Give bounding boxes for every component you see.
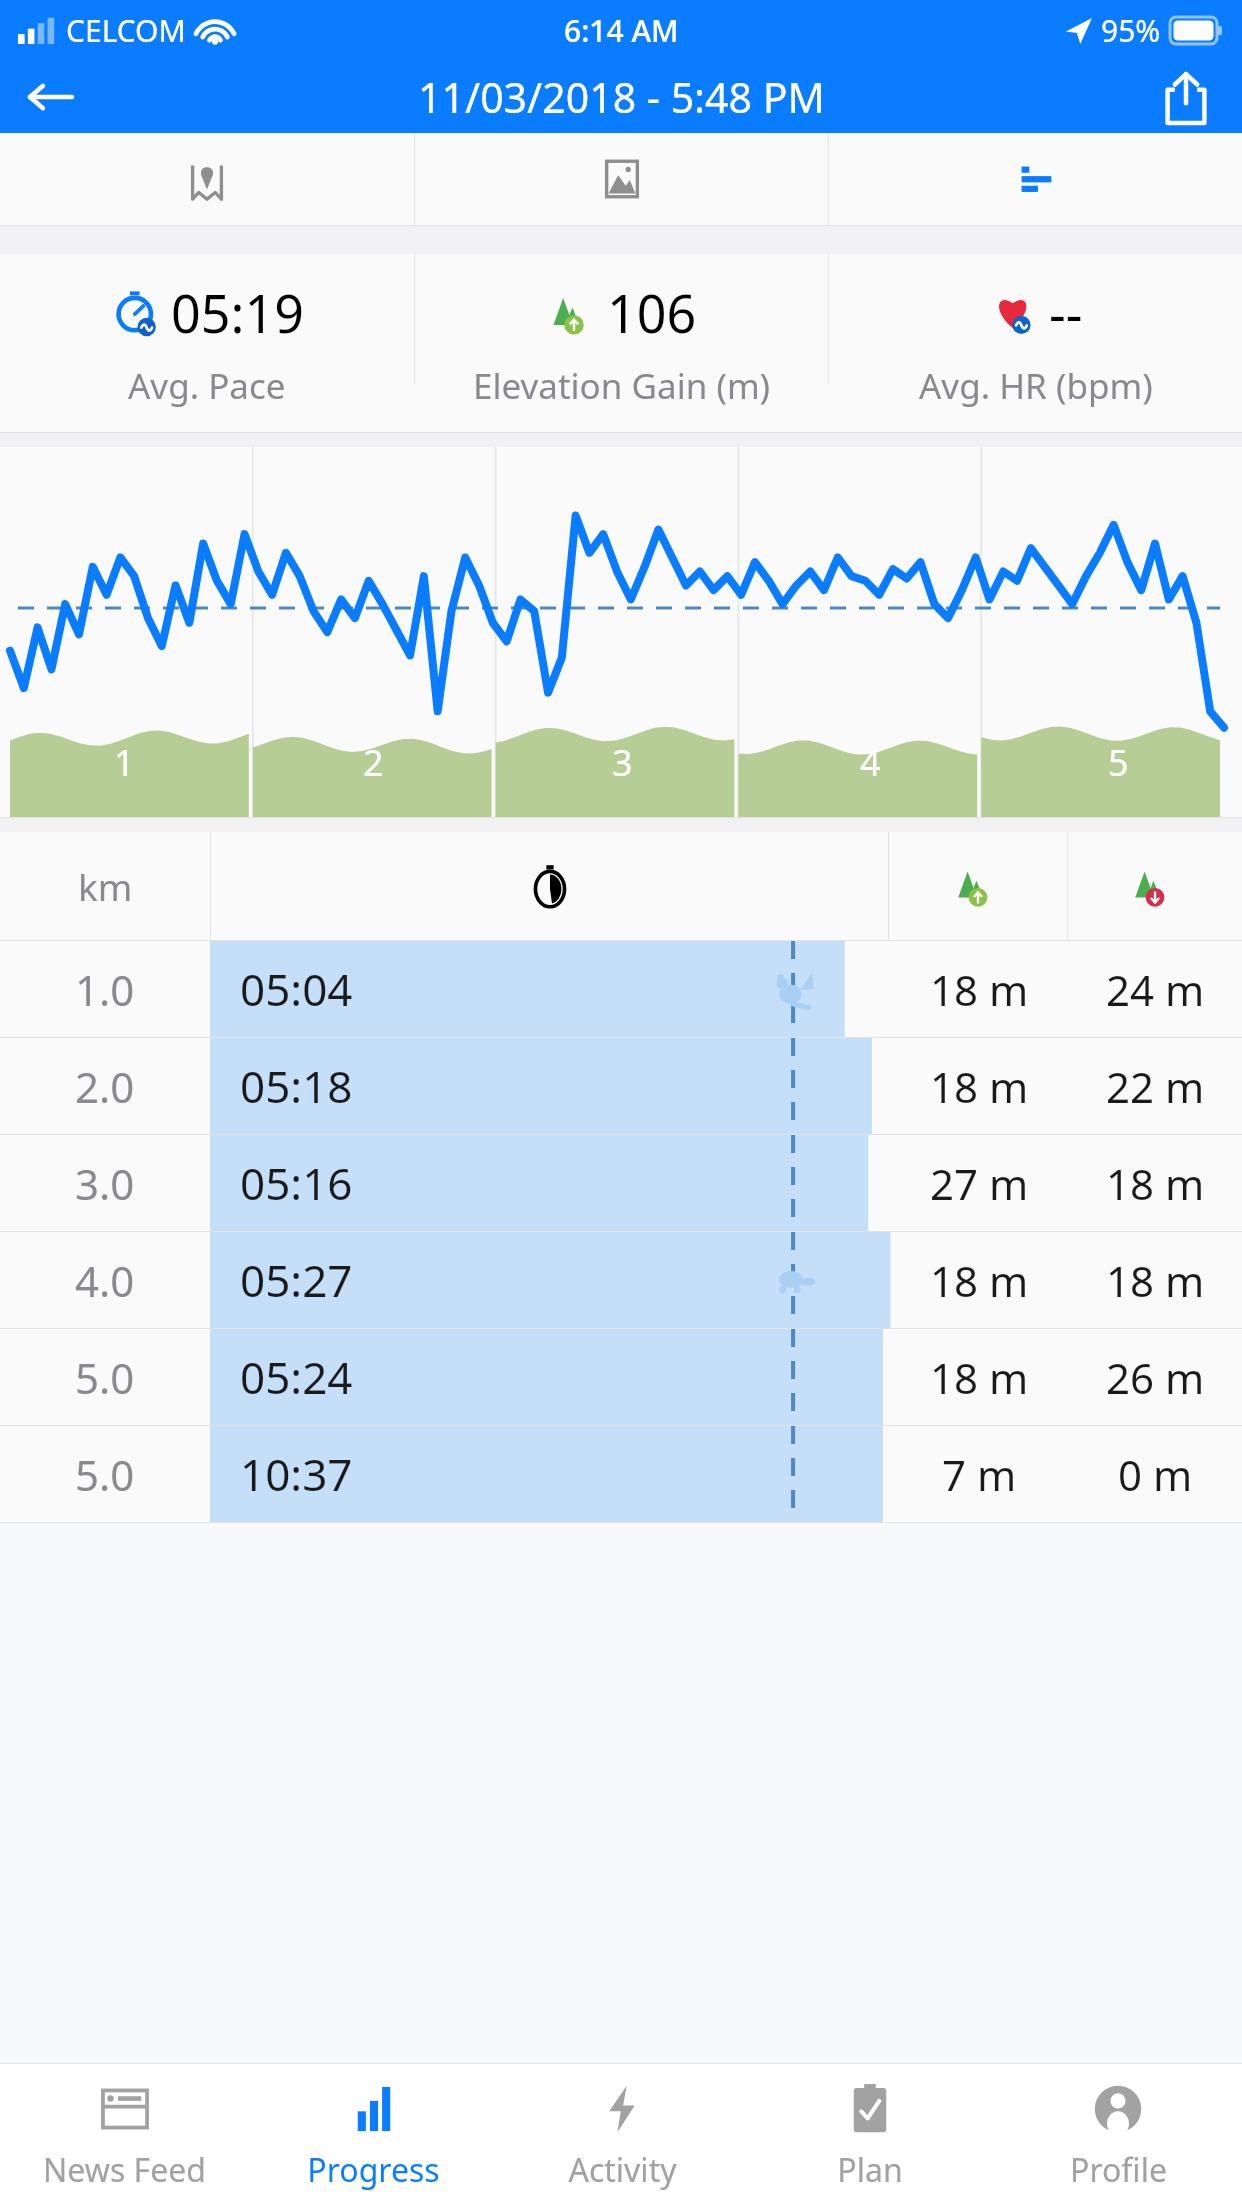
staticText: 18 m	[1106, 1155, 1205, 1212]
staticText: 10:37	[240, 1444, 353, 1504]
staticText: 05:24	[240, 1347, 353, 1407]
button[interactable]: 2.0	[0, 1038, 1242, 1134]
staticText: 1	[114, 738, 135, 787]
button[interactable]: --	[829, 254, 1242, 432]
staticText: News Feed	[43, 2148, 206, 2192]
staticText: 18 m	[930, 961, 1029, 1018]
staticText: Profile	[1070, 2148, 1167, 2192]
staticText: Avg. Pace	[128, 362, 286, 410]
staticText: 95%	[1101, 10, 1161, 51]
staticText: 1.0	[75, 961, 135, 1018]
staticText: Progress	[307, 2148, 440, 2192]
staticText: 5.0	[75, 1349, 135, 1406]
staticText: CELCOM	[66, 10, 186, 51]
staticText: 26 m	[1106, 1349, 1205, 1406]
staticText: 2.0	[75, 1058, 135, 1115]
staticText: 18 m	[930, 1252, 1029, 1309]
staticText: 6:14 AM	[564, 10, 679, 51]
button[interactable]: Map	[0, 133, 414, 225]
button[interactable]: Plan	[746, 2063, 994, 2208]
staticText: 24 m	[1106, 961, 1205, 1018]
staticText: 18 m	[1106, 1252, 1205, 1309]
staticText: 22 m	[1106, 1058, 1205, 1115]
staticText: 5.0	[75, 1446, 135, 1503]
staticText: 2	[363, 738, 384, 787]
staticText: 0 m	[1118, 1446, 1193, 1503]
staticText: 3.0	[75, 1155, 135, 1212]
staticText: 7 m	[942, 1446, 1017, 1503]
button[interactable]: 4.0	[0, 1232, 1242, 1328]
button[interactable]: Progress	[249, 2063, 498, 2208]
staticText: 11/03/2018 - 5:48 PM	[418, 69, 825, 125]
button[interactable]: 1.0	[0, 941, 1242, 1037]
staticText: 4	[860, 738, 881, 787]
staticText: km	[78, 861, 133, 911]
staticText: Plan	[837, 2148, 903, 2192]
button[interactable]: Stats	[829, 133, 1242, 225]
button[interactable]: 3.0	[0, 1135, 1242, 1231]
staticText: 05:16	[240, 1153, 353, 1213]
button[interactable]: Profile	[994, 2063, 1242, 2208]
staticText: 05:04	[240, 959, 353, 1019]
button[interactable]: Photos	[415, 133, 828, 225]
staticText: 4.0	[75, 1252, 135, 1309]
staticText: 3	[612, 738, 633, 787]
button[interactable]: 5.0	[0, 1329, 1242, 1425]
button[interactable]: Back	[12, 60, 88, 133]
staticText: 18 m	[930, 1349, 1029, 1406]
staticText: 106	[607, 277, 697, 348]
button[interactable]: 5.0	[0, 1426, 1242, 1522]
staticText: 05:19	[171, 277, 304, 348]
staticText: 5	[1108, 738, 1129, 787]
staticText: 05:27	[240, 1250, 353, 1310]
button[interactable]: 05:19	[0, 254, 414, 432]
button[interactable]: Share	[1148, 60, 1224, 133]
staticText: 05:18	[240, 1056, 353, 1116]
button[interactable]: News Feed	[0, 2063, 249, 2208]
staticText: Activity	[568, 2148, 677, 2192]
staticText: 27 m	[930, 1155, 1029, 1212]
staticText: Elevation Gain (m)	[473, 362, 771, 410]
button[interactable]: Activity	[498, 2063, 746, 2208]
staticText: --	[1049, 277, 1083, 348]
button[interactable]: 106	[415, 254, 828, 432]
staticText: Avg. HR (bpm)	[919, 362, 1153, 410]
staticText: 18 m	[930, 1058, 1029, 1115]
